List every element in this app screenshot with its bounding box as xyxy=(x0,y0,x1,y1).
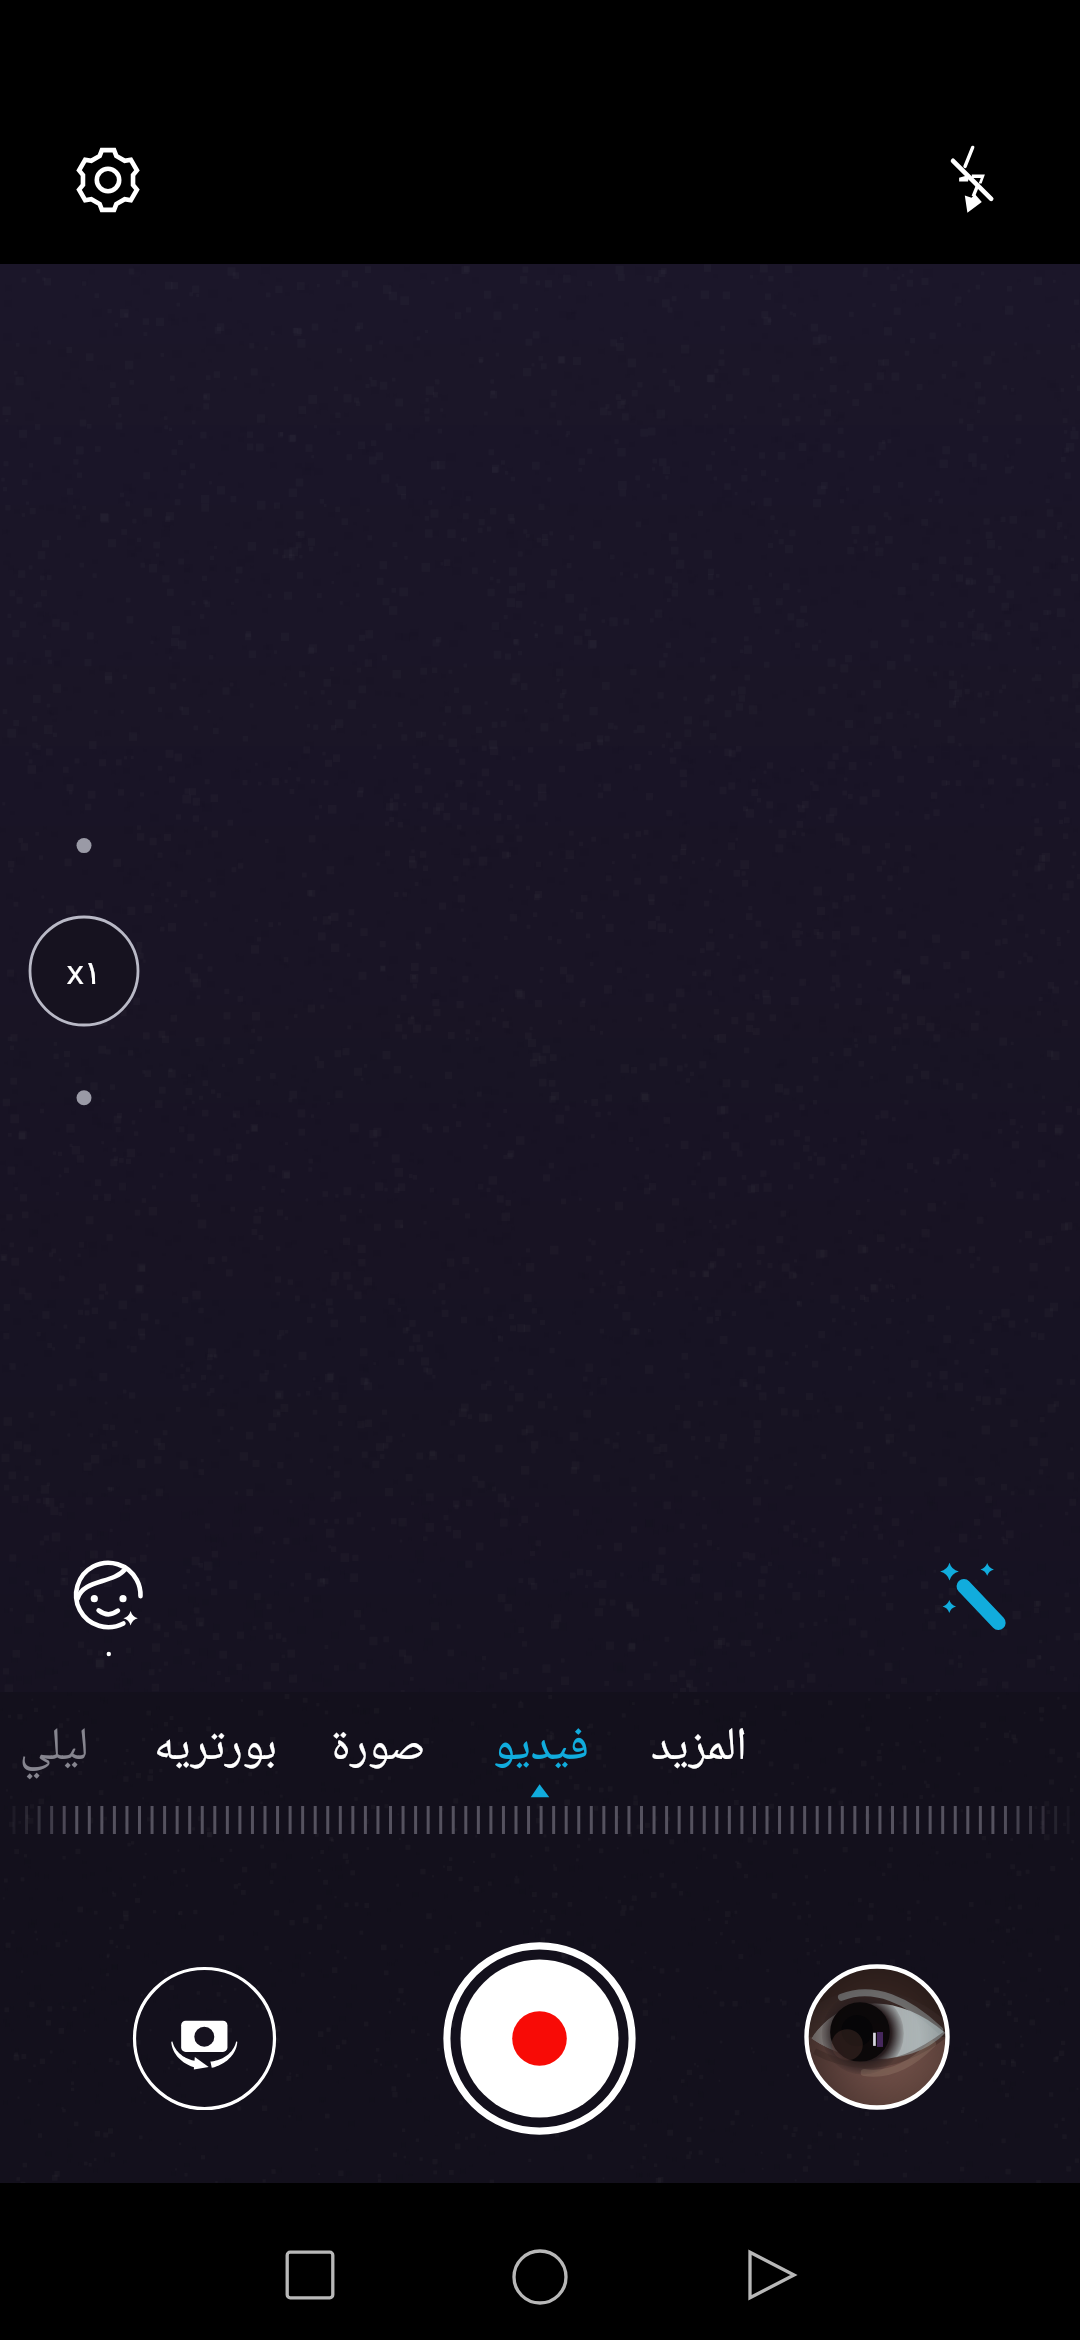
button[interactable]: بورتريه xyxy=(120,1710,310,1782)
button[interactable]: Record video xyxy=(439,1938,640,2139)
button[interactable]: Gallery xyxy=(803,1963,951,2111)
button[interactable]: Settings xyxy=(48,120,168,240)
button[interactable]: Flash off xyxy=(912,120,1032,240)
button[interactable]: المزيد xyxy=(604,1710,794,1782)
button[interactable]: Zoom 1x xyxy=(14,830,154,1110)
staticText: صورة xyxy=(331,1710,426,1782)
button[interactable]: Recent apps xyxy=(270,2235,350,2315)
staticText: المزيد xyxy=(651,1710,747,1782)
staticText: فيديو xyxy=(493,1710,589,1782)
button[interactable]: فيديو xyxy=(446,1710,636,1782)
button[interactable]: ليلي xyxy=(0,1710,149,1782)
button[interactable]: Switch camera xyxy=(132,1966,277,2111)
staticText: ليلي xyxy=(19,1710,89,1782)
staticText: x١ xyxy=(66,949,102,994)
button[interactable]: Beauty xyxy=(58,1552,166,1660)
button[interactable]: Home xyxy=(500,2237,580,2317)
button[interactable]: Filters xyxy=(925,1555,1020,1650)
staticText: بورتريه xyxy=(154,1710,277,1782)
button[interactable]: صورة xyxy=(283,1710,473,1782)
button[interactable]: Back xyxy=(732,2235,812,2315)
